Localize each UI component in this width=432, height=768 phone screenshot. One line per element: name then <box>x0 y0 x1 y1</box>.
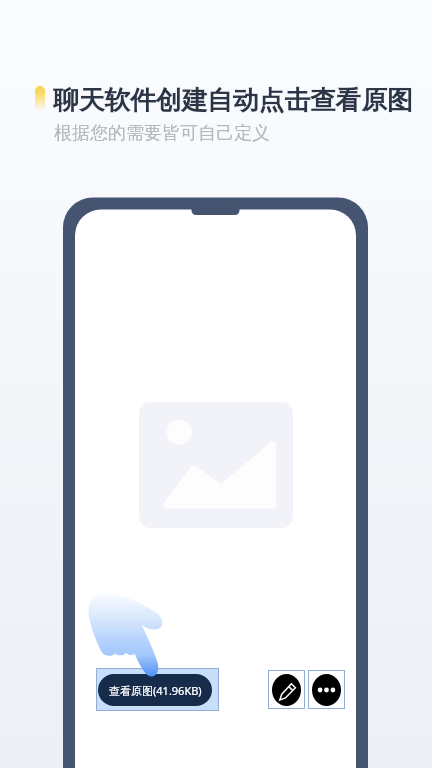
staticText: 聊天软件创建自动点击查看原图 <box>53 84 413 116</box>
staticText: 根据您的需要皆可自己定义 <box>54 122 270 145</box>
button[interactable]: Edit <box>268 670 305 709</box>
button[interactable]: More options <box>308 670 345 709</box>
staticText: 查看原图(41.96KB) <box>109 683 202 698</box>
button[interactable]: 查看原图(41.96KB) <box>96 668 219 711</box>
